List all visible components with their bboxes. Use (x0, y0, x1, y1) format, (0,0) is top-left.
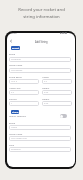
staticText: Any Rocket (11, 69, 23, 72)
staticText: 4.7 (11, 91, 15, 94)
staticText: Any Model Line (11, 137, 27, 140)
staticText: 0.75 (44, 91, 49, 94)
staticText: Brand (9, 53, 16, 56)
button[interactable]: Import Category toggle (60, 114, 67, 118)
staticText: Nozzle Size (9, 87, 21, 90)
staticText: Add String (35, 40, 48, 43)
staticText: String Resist (9, 76, 22, 79)
staticText: 4.7 (44, 80, 48, 83)
staticText: Nozzle (42, 76, 49, 79)
button[interactable]: Nylon (9, 125, 71, 130)
button[interactable]: String (11, 110, 19, 114)
staticText: Whatever (11, 58, 21, 61)
staticText: 0.75 (44, 102, 49, 105)
staticText: Type (9, 144, 14, 147)
staticText: 10:29 (11, 32, 17, 35)
staticText: Nylon (11, 126, 18, 129)
button[interactable]: Whatever (9, 57, 71, 62)
button[interactable]: 18 x 3 (9, 79, 39, 84)
button[interactable]: Any Rocket (9, 68, 71, 73)
staticText: Brand (9, 122, 16, 125)
staticText: Weight (42, 87, 50, 90)
staticText: Model Name (9, 64, 23, 67)
button[interactable]: 0.75 (42, 90, 72, 95)
staticText: 18 x 3 (11, 80, 18, 83)
button[interactable]: 1 (9, 101, 39, 106)
staticText: Import Category (9, 115, 27, 118)
button[interactable]: Polyester (9, 147, 71, 152)
staticText: Rocket (12, 47, 20, 50)
button[interactable]: Rocket (11, 46, 20, 50)
button[interactable]: 0.75 (42, 101, 72, 106)
staticText: Weight (42, 98, 50, 101)
staticText: 1 (11, 102, 13, 105)
staticText: Model Name (9, 133, 23, 136)
staticText: string information (23, 13, 60, 19)
button[interactable]: Any Model Line (9, 136, 71, 141)
staticText: String (12, 111, 19, 114)
staticText: Polyester (11, 148, 21, 151)
button[interactable]: 4.7 (42, 79, 72, 84)
button[interactable]: Back (8, 38, 14, 44)
button[interactable]: 4.7 (9, 90, 39, 95)
staticText: Surface (9, 98, 17, 101)
staticText: Record your rocket and (18, 6, 65, 12)
